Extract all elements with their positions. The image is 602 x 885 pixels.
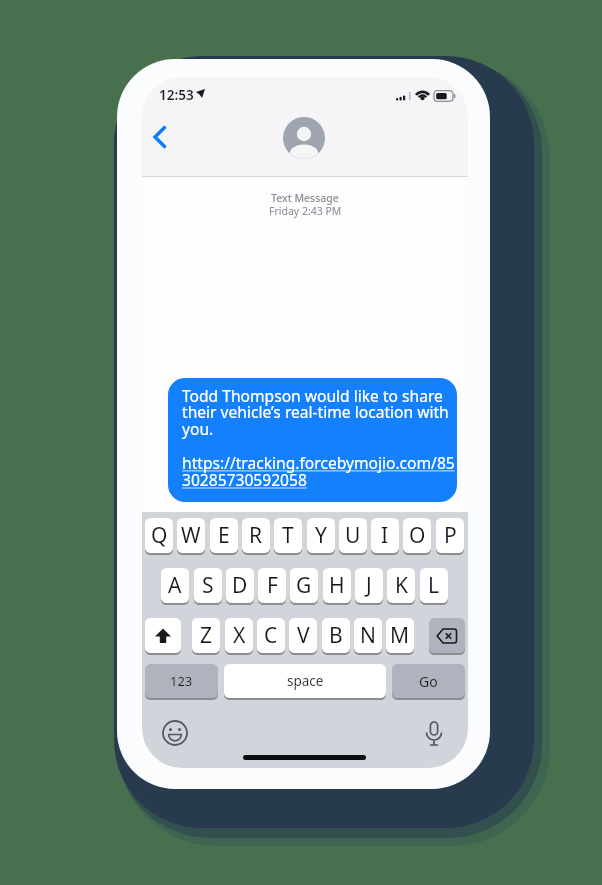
button[interactable]: B [322,618,350,653]
staticText: R [249,521,263,550]
button[interactable]: O [403,518,431,553]
staticText: D [232,571,248,600]
staticText: C [264,621,278,650]
staticText: N [360,621,376,650]
staticText: O [409,521,426,550]
button[interactable]: W [177,518,205,553]
button[interactable]: I [371,518,399,553]
staticText: W [181,521,201,550]
button[interactable] [283,117,325,159]
staticText: G [296,571,312,600]
staticText: Z [200,621,213,650]
staticText: E [218,521,230,550]
staticText: V [297,621,310,650]
staticText: Go [419,672,438,691]
button[interactable]: G [290,568,318,603]
button[interactable]: P [436,518,464,553]
staticText: B [329,621,343,650]
button[interactable]: V [289,618,317,653]
staticText: S [202,571,214,600]
staticText: H [329,571,345,600]
button[interactable]: H [323,568,351,603]
button[interactable] [145,618,181,653]
button[interactable]: Y [307,518,335,553]
staticText: K [395,571,408,600]
button[interactable]: U [339,518,367,553]
staticText: space [287,672,324,690]
button[interactable]: C [257,618,285,653]
staticText: L [428,571,440,600]
button[interactable]: D [226,568,254,603]
button[interactable]: Go [392,664,465,698]
staticText: J [366,571,372,600]
button[interactable] [148,121,170,153]
button[interactable]: X [225,618,253,653]
button[interactable]: Q [145,518,173,553]
button[interactable]: K [387,568,415,603]
staticText: Todd Thompson would like to share their … [182,385,455,491]
staticText: 123 [170,672,193,690]
staticText: U [345,521,361,550]
staticText: Text Message [271,191,339,205]
button[interactable] [429,618,465,653]
button[interactable]: A [161,568,189,603]
staticText: T [282,521,294,550]
button[interactable]: space [224,664,386,698]
button[interactable]: 123 [145,664,218,698]
staticText: Y [315,521,327,550]
staticText: Q [151,521,168,550]
button[interactable]: F [258,568,286,603]
button[interactable]: E [210,518,238,553]
staticText: F [267,571,278,600]
staticText: M [390,621,410,650]
button[interactable]: J [355,568,383,603]
staticText: P [444,521,457,550]
staticText: X [233,621,246,650]
staticText: 12:53 [159,86,194,104]
staticText: Friday 2:43 PM [269,204,342,218]
button[interactable]: R [242,518,270,553]
button[interactable]: M [386,618,414,653]
staticText: I [381,521,389,550]
button[interactable]: L [420,568,448,603]
button[interactable]: T [274,518,302,553]
button[interactable]: Z [192,618,220,653]
button[interactable]: Todd Thompson would like to share their … [168,378,457,502]
button[interactable]: N [354,618,382,653]
button[interactable]: S [194,568,222,603]
staticText: A [168,571,182,600]
